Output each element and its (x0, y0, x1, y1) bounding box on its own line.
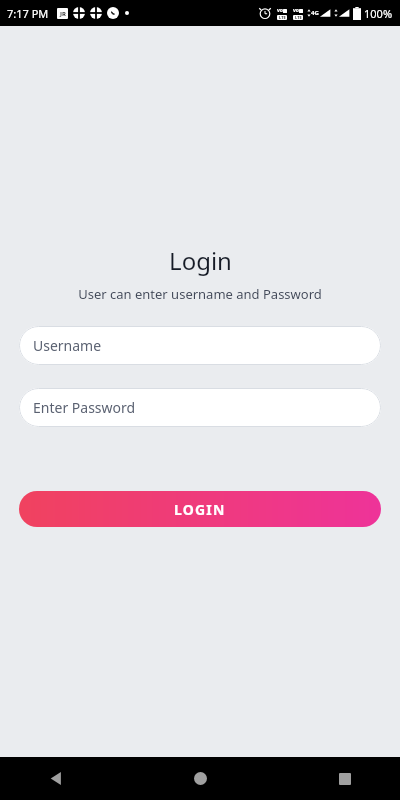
staticText: LOGIN (174, 500, 226, 519)
staticText: 4G (311, 9, 319, 17)
button[interactable]: LOGIN (19, 491, 381, 527)
staticText: 100% (364, 6, 393, 21)
staticText: 7:17 PM (7, 6, 49, 21)
button[interactable]: Recent apps (267, 757, 400, 800)
button[interactable]: Username (19, 326, 381, 365)
staticText: Username (33, 336, 102, 355)
staticText: vo (293, 7, 299, 14)
staticText: LTE (279, 15, 286, 20)
staticText: JR (60, 10, 66, 18)
button[interactable]: Home (134, 757, 267, 800)
button[interactable]: Back (0, 757, 134, 800)
staticText: User can enter username and Password (78, 285, 322, 303)
staticText: Enter Password (33, 398, 136, 417)
button[interactable]: Enter Password (19, 388, 381, 427)
staticText: LTE (295, 15, 302, 20)
staticText: vo (277, 7, 283, 14)
staticText: Login (169, 244, 232, 277)
